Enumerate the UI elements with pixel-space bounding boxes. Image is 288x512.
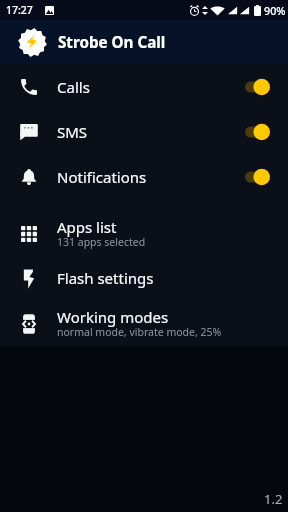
staticText: Working modes xyxy=(57,307,169,327)
staticText: SMS xyxy=(57,122,88,142)
staticText: 1.2 xyxy=(264,490,283,508)
staticText: normal mode, vibrate mode, 25% xyxy=(57,325,222,339)
button[interactable]: Toggle SMS xyxy=(241,118,274,146)
button[interactable]: Apps list xyxy=(0,211,288,256)
staticText: Calls xyxy=(57,77,90,97)
staticText: 90% xyxy=(264,3,286,18)
button[interactable]: Toggle Calls xyxy=(241,73,274,101)
button[interactable]: Toggle Notifications xyxy=(241,163,274,191)
button[interactable]: Calls xyxy=(0,64,288,109)
staticText: Apps list xyxy=(57,217,117,237)
staticText: Strobe On Call xyxy=(58,32,166,53)
staticText: 131 apps selected xyxy=(57,235,146,249)
staticText: Notifications xyxy=(57,167,147,187)
staticText: 17:27 xyxy=(6,3,33,17)
button[interactable]: Notifications xyxy=(0,154,288,199)
button[interactable]: Strobe On Call app icon xyxy=(18,28,47,57)
button[interactable]: Working modes xyxy=(0,301,288,346)
button[interactable]: SMS xyxy=(0,109,288,154)
button[interactable]: Flash settings xyxy=(0,256,288,301)
staticText: Flash settings xyxy=(57,268,154,288)
